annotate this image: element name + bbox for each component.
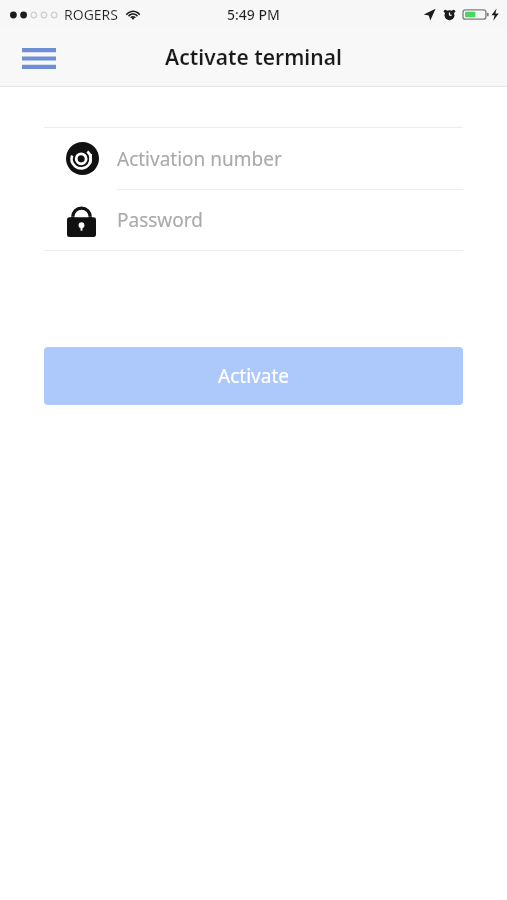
staticText: Activate terminal [165, 43, 342, 72]
button[interactable]: Activation number [44, 128, 463, 189]
staticText: ROGERS [64, 5, 119, 24]
staticText: Activate [218, 363, 289, 389]
staticText: Activation number [117, 146, 282, 172]
button[interactable]: Open navigation menu [10, 34, 68, 82]
staticText: Password [117, 207, 203, 233]
button[interactable]: Password [44, 190, 463, 250]
button[interactable]: Activate [44, 347, 463, 405]
staticText: 5:49 PM [227, 5, 280, 24]
